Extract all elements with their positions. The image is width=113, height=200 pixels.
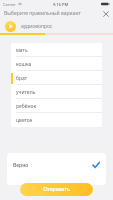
staticText: кошка <box>16 61 32 68</box>
button[interactable]: Play audio <box>5 19 108 33</box>
button[interactable]: мать <box>11 43 102 57</box>
staticText: учитель <box>16 89 36 96</box>
staticText: Верно <box>13 162 29 169</box>
button[interactable]: Отправить <box>20 183 93 196</box>
staticText: Выберите правильный вариант <box>4 10 81 17</box>
staticText: 9:16 PM <box>53 2 69 7</box>
button[interactable]: учитель <box>11 85 102 99</box>
button[interactable]: цветок <box>11 113 102 127</box>
staticText: мать <box>16 47 28 54</box>
staticText: брат <box>16 75 28 82</box>
button[interactable]: брат <box>11 71 102 85</box>
staticText: аудиовопрос <box>21 23 53 30</box>
staticText: ребёнок <box>16 103 37 110</box>
button[interactable]: кошка <box>11 57 102 71</box>
staticText: Carrier <box>3 2 17 7</box>
button[interactable]: ребёнок <box>11 99 102 113</box>
button[interactable]: Close <box>100 8 111 19</box>
staticText: Отправить <box>43 186 70 193</box>
staticText: цветок <box>16 117 33 124</box>
other: Play audio <box>5 21 16 32</box>
